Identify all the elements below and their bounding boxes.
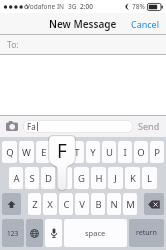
button[interactable]: V: [75, 193, 89, 215]
staticText: H: [95, 172, 103, 185]
staticText: To:: [7, 39, 19, 51]
button[interactable]: J: [108, 167, 123, 189]
button[interactable]: A: [9, 167, 23, 189]
staticText: 2:00: [80, 2, 93, 11]
button[interactable]: Cancel: [129, 15, 162, 33]
staticText: A: [13, 172, 20, 185]
button[interactable]: Dictate: [45, 219, 62, 247]
staticText: Y: [90, 146, 96, 159]
button[interactable]: I: [118, 141, 132, 163]
button[interactable]: E: [36, 141, 51, 163]
button[interactable]: Y: [86, 141, 100, 163]
staticText: Q: [6, 146, 14, 159]
staticText: L: [147, 172, 152, 185]
button[interactable]: Change language: [26, 219, 43, 247]
staticText: X: [47, 198, 53, 211]
staticText: M: [126, 198, 135, 211]
button[interactable]: [53, 141, 68, 163]
staticText: Send: [138, 120, 160, 132]
button[interactable]: Z: [28, 193, 41, 215]
staticText: V: [79, 198, 85, 211]
staticText: C: [63, 198, 70, 211]
button[interactable]: U: [102, 141, 116, 163]
button[interactable]: G: [74, 167, 89, 189]
button[interactable]: P: [150, 141, 164, 163]
button[interactable]: Shift: [2, 193, 21, 215]
staticText: G: [78, 172, 85, 185]
staticText: D: [45, 172, 52, 185]
button[interactable]: S: [25, 167, 39, 189]
staticText: I: [123, 146, 127, 159]
staticText: O: [137, 146, 145, 159]
staticText: T: [74, 146, 80, 159]
staticText: Fa: [27, 121, 36, 132]
button[interactable]: M: [123, 193, 137, 215]
button[interactable]: L: [142, 167, 157, 189]
staticText: Z: [32, 198, 38, 211]
staticText: return: [136, 228, 157, 238]
staticText: B: [95, 198, 102, 211]
staticText: 123: [7, 229, 19, 238]
staticText: K: [130, 172, 136, 185]
staticText: P: [154, 146, 160, 159]
button[interactable]: To:: [0, 35, 166, 55]
button[interactable]: X: [43, 193, 57, 215]
staticText: U: [106, 146, 113, 159]
staticText: F: [57, 138, 67, 164]
button[interactable]: T: [70, 141, 84, 163]
staticText: New Message: [49, 17, 117, 31]
staticText: S: [29, 172, 35, 185]
button[interactable]: Q: [2, 141, 17, 163]
staticText: space: [85, 228, 106, 238]
button[interactable]: Send: [136, 117, 162, 135]
button[interactable]: Take photo: [4, 118, 20, 134]
button[interactable]: return: [129, 219, 164, 247]
button[interactable]: W: [19, 141, 34, 163]
button[interactable]: C: [59, 193, 73, 215]
button[interactable]: H: [91, 167, 106, 189]
button[interactable]: D: [41, 167, 55, 189]
button[interactable]: 123: [2, 219, 24, 247]
staticText: Vodafone IN: [26, 2, 65, 11]
button[interactable]: Fa: [23, 120, 133, 133]
button[interactable]: Backspace: [144, 193, 164, 215]
staticText: N: [110, 198, 118, 211]
button[interactable]: space: [64, 219, 127, 247]
button[interactable]: [57, 167, 72, 189]
button[interactable]: N: [107, 193, 121, 215]
button[interactable]: K: [125, 167, 140, 189]
button[interactable]: O: [134, 141, 148, 163]
button[interactable]: B: [91, 193, 105, 215]
staticText: Cancel: [131, 18, 160, 30]
staticText: 78%: [132, 2, 145, 11]
staticText: W: [22, 146, 31, 159]
staticText: 3G: [68, 2, 77, 11]
staticText: E: [41, 146, 47, 159]
staticText: J: [114, 172, 117, 185]
